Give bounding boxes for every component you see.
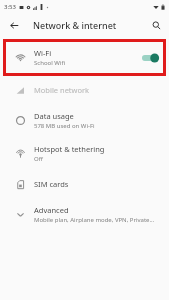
staticText: Off xyxy=(34,155,43,163)
button[interactable]: Wi-Fi toggle xyxy=(137,48,163,68)
button[interactable]: Advanced xyxy=(0,198,169,231)
staticText: Hotspot & tethering xyxy=(34,144,105,154)
staticText: Advanced xyxy=(34,205,69,215)
button[interactable]: Search xyxy=(148,17,164,33)
staticText: Wi-Fi xyxy=(34,48,52,58)
staticText: Mobile network xyxy=(34,85,90,95)
staticText: 3:53 xyxy=(4,3,16,11)
staticText: Data usage xyxy=(34,111,74,121)
button[interactable]: Wi-Fi xyxy=(3,39,166,76)
button[interactable]: Hotspot & tethering xyxy=(0,137,169,170)
button[interactable]: SIM cards xyxy=(0,170,169,198)
button[interactable]: Back xyxy=(6,17,22,33)
staticText: 578 MB used on Wi-Fi xyxy=(34,122,95,130)
staticText: SIM cards xyxy=(34,179,69,189)
staticText: Network & internet xyxy=(33,19,117,31)
button[interactable]: Mobile network xyxy=(0,76,169,104)
staticText: School Wifi xyxy=(34,59,65,67)
button[interactable]: Data usage xyxy=(0,104,169,137)
staticText: Mobile plan, Airplane mode, VPN, Private… xyxy=(34,216,155,224)
